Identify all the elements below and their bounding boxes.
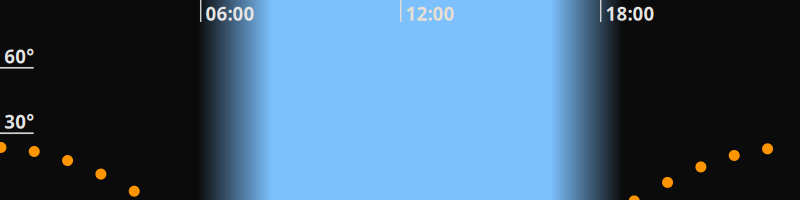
button[interactable]: Elevation chart xyxy=(0,0,800,200)
staticText: 30° xyxy=(4,109,34,134)
staticText: 60° xyxy=(4,44,34,69)
staticText: 12:00 xyxy=(405,1,454,26)
button[interactable]: 18:00 xyxy=(600,0,656,26)
staticText: 06:00 xyxy=(205,1,254,26)
staticText: 18:00 xyxy=(605,1,654,26)
button[interactable]: 06:00 xyxy=(200,0,256,26)
button[interactable]: 12:00 xyxy=(400,0,456,26)
